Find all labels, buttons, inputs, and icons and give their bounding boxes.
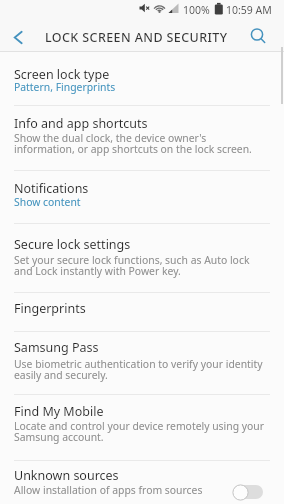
- staticText: LOCK SCREEN AND SECURITY: [45, 29, 228, 46]
- button[interactable]: [0, 52, 284, 105]
- staticText: Samsung Pass: [14, 339, 99, 356]
- button[interactable]: [0, 461, 284, 504]
- button[interactable]: [0, 106, 284, 170]
- staticText: Allow installation of apps from sources: [14, 483, 203, 497]
- staticText: Notifications: [14, 180, 89, 197]
- button[interactable]: [0, 224, 284, 292]
- button[interactable]: [0, 332, 284, 394]
- staticText: Secure lock settings: [14, 236, 131, 253]
- button[interactable]: [0, 293, 284, 331]
- staticText: Show content: [14, 195, 81, 209]
- staticText: Pattern, Fingerprints: [14, 80, 116, 94]
- button[interactable]: [233, 485, 263, 499]
- staticText: Screen lock type: [14, 66, 110, 83]
- button[interactable]: [246, 23, 270, 47]
- staticText: 10:59 AM: [226, 3, 272, 17]
- staticText: 100%: [183, 3, 210, 17]
- staticText: Info and app shortcuts: [14, 115, 148, 132]
- staticText: Set your secure lock functions, such as …: [14, 253, 250, 278]
- button[interactable]: [0, 395, 284, 460]
- button[interactable]: [0, 171, 284, 223]
- staticText: Fingerprints: [14, 300, 86, 317]
- staticText: Find My Mobile: [14, 403, 104, 420]
- button[interactable]: [5, 24, 31, 50]
- staticText: Show the dual clock, the device owner's …: [14, 131, 252, 156]
- staticText: Use biometric authentication to verify y…: [14, 357, 263, 382]
- staticText: Unknown sources: [14, 467, 119, 484]
- staticText: Locate and control your device remotely …: [14, 419, 265, 444]
